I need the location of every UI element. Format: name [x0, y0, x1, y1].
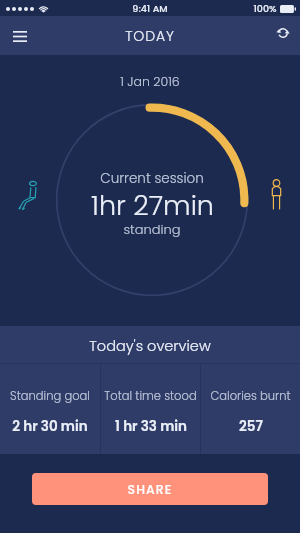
button[interactable]: Open navigation menu — [4, 20, 36, 52]
button[interactable]: SHARE — [32, 473, 268, 505]
button[interactable]: Calories burnt — [201, 364, 300, 454]
staticText: Standing goal — [10, 388, 90, 404]
staticText: Total time stood — [104, 388, 197, 404]
staticText: 100% — [253, 2, 277, 15]
staticText: 1hr 27min — [91, 187, 214, 225]
staticText: 257 — [239, 417, 263, 436]
staticText: Calories burnt — [210, 388, 291, 404]
button[interactable]: Total time stood — [101, 364, 200, 454]
button[interactable]: Refresh — [275, 25, 291, 41]
staticText: 1 Jan 2016 — [120, 73, 180, 90]
staticText: Today's overview — [89, 336, 211, 356]
staticText: TODAY — [125, 26, 175, 46]
staticText: 2 hr 30 min — [12, 417, 88, 436]
staticText: SHARE — [127, 481, 173, 498]
button[interactable]: Standing goal — [0, 364, 100, 454]
staticText: standing — [123, 220, 181, 238]
staticText: 1 hr 33 min — [115, 417, 187, 436]
staticText: 9:41 AM — [132, 2, 168, 15]
staticText: Current session — [100, 169, 204, 188]
